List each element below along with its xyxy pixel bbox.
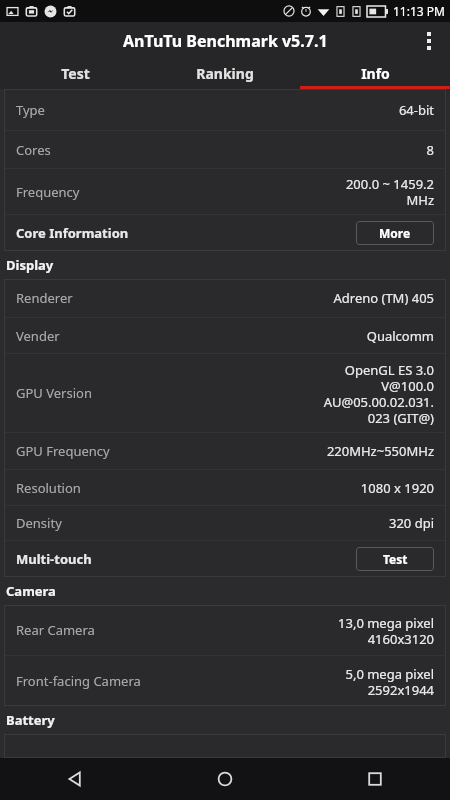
staticText: GPU Frequency [16, 442, 326, 460]
button[interactable]: Rear Camera [4, 605, 446, 655]
button[interactable]: GPU Frequency [4, 433, 446, 469]
staticText: 13,0 mega pixel 4160x3120 [338, 614, 434, 647]
staticText: Ranking [196, 64, 254, 83]
button[interactable]: Info [300, 60, 450, 86]
button[interactable]: Resolution [4, 470, 446, 505]
button[interactable]: Vender [4, 318, 446, 353]
staticText: 220MHz~550MHz [326, 442, 434, 460]
button[interactable]: Test [356, 547, 434, 571]
button[interactable]: Ranking [150, 60, 300, 86]
staticText: More [379, 225, 411, 241]
staticText: AnTuTu Benchmark v5.7.1 [123, 30, 328, 52]
staticText: Front-facing Camera [16, 672, 345, 690]
button[interactable]: Renderer [4, 279, 446, 317]
button[interactable]: GPU Version [4, 354, 446, 432]
staticText: Core Information [16, 224, 356, 242]
staticText: Display [6, 256, 54, 274]
staticText: Rear Camera [16, 621, 338, 639]
button[interactable]: Type [4, 89, 446, 130]
staticText: Renderer [16, 289, 333, 307]
button[interactable]: Home [150, 758, 300, 800]
staticText: Vender [16, 327, 366, 345]
staticText: OpenGL ES 3.0 V@100.0 AU@05.00.02.031. 0… [323, 361, 434, 426]
staticText: Test [61, 64, 90, 83]
staticText: 320 dpi [388, 514, 434, 532]
staticText: Cores [16, 141, 426, 159]
button[interactable]: Test [0, 60, 150, 86]
button[interactable]: Density [4, 506, 446, 540]
staticText: Battery [6, 711, 55, 729]
button[interactable]: Recents [300, 758, 450, 800]
staticText: Qualcomm [366, 327, 434, 345]
button[interactable]: Back [0, 758, 150, 800]
staticText: Info [361, 64, 390, 83]
staticText: Camera [6, 582, 56, 600]
staticText: Resolution [16, 479, 360, 497]
button[interactable]: Frequency [4, 169, 446, 214]
staticText: 64-bit [398, 101, 434, 119]
staticText: Adreno (TM) 405 [333, 289, 434, 307]
staticText: 200.0 ~ 1459.2 MHz [345, 175, 434, 208]
staticText: 11:13 PM [393, 3, 445, 19]
button[interactable]: More [356, 221, 434, 245]
staticText: 1080 x 1920 [360, 479, 434, 497]
staticText: GPU Version [16, 384, 323, 402]
button[interactable]: More options [408, 22, 450, 60]
staticText: Frequency [16, 183, 345, 201]
button[interactable]: Cores [4, 131, 446, 168]
staticText: Density [16, 514, 388, 532]
staticText: Type [16, 101, 398, 119]
button[interactable]: Front-facing Camera [4, 656, 446, 706]
staticText: Test [383, 551, 408, 567]
staticText: 8 [426, 141, 434, 159]
staticText: Multi-touch [16, 550, 356, 568]
staticText: 5,0 mega pixel 2592x1944 [345, 665, 434, 698]
